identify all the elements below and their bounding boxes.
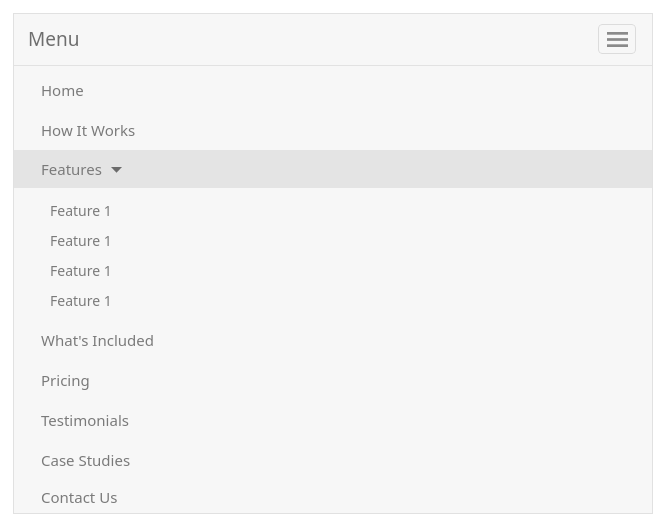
button[interactable]: Case Studies xyxy=(13,440,653,480)
staticText: Feature 1 xyxy=(50,291,112,310)
staticText: Feature 1 xyxy=(50,231,112,250)
button[interactable]: Feature 1 xyxy=(13,285,653,315)
button[interactable]: What's Included xyxy=(13,320,653,360)
button[interactable]: Feature 1 xyxy=(13,255,653,285)
button[interactable]: How It Works xyxy=(13,110,653,150)
staticText: Menu xyxy=(28,26,80,52)
button[interactable]: Testimonials xyxy=(13,400,653,440)
staticText: Home xyxy=(41,80,84,100)
button[interactable]: Features xyxy=(13,150,653,188)
staticText: What's Included xyxy=(41,330,154,350)
staticText: Testimonials xyxy=(41,410,129,430)
button[interactable]: Contact Us xyxy=(13,480,653,514)
staticText: How It Works xyxy=(41,120,136,140)
staticText: Feature 1 xyxy=(50,201,112,220)
staticText: Features xyxy=(41,159,102,179)
staticText: Case Studies xyxy=(41,450,131,470)
staticText: Pricing xyxy=(41,370,90,390)
button[interactable]: Feature 1 xyxy=(13,195,653,225)
button[interactable]: Toggle navigation menu xyxy=(598,24,636,54)
button[interactable]: Home xyxy=(13,70,653,110)
button[interactable]: Pricing xyxy=(13,360,653,400)
staticText: Feature 1 xyxy=(50,261,112,280)
staticText: Contact Us xyxy=(41,487,118,507)
button[interactable]: Feature 1 xyxy=(13,225,653,255)
